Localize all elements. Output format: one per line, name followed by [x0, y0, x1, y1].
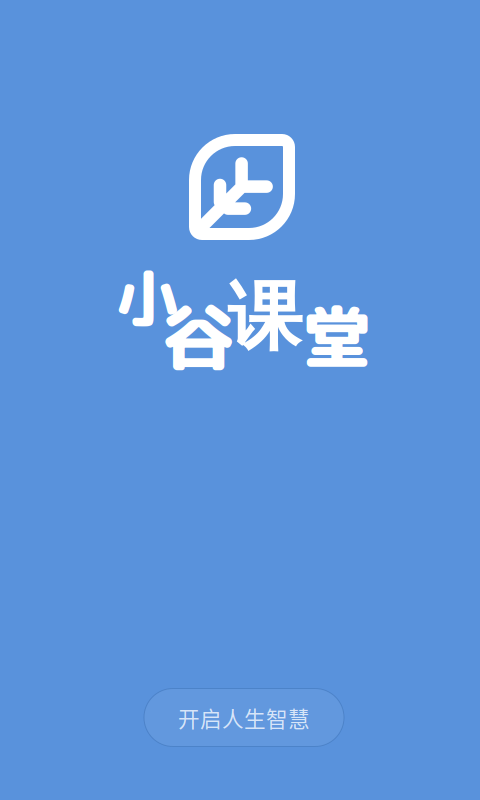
- staticText: 开启人生智慧: [178, 702, 310, 733]
- staticText: 谷: [161, 284, 234, 387]
- staticText: 课: [227, 270, 302, 365]
- staticText: 堂: [303, 289, 371, 383]
- staticText: 小: [116, 254, 177, 340]
- button[interactable]: 开启人生智慧: [144, 688, 344, 746]
